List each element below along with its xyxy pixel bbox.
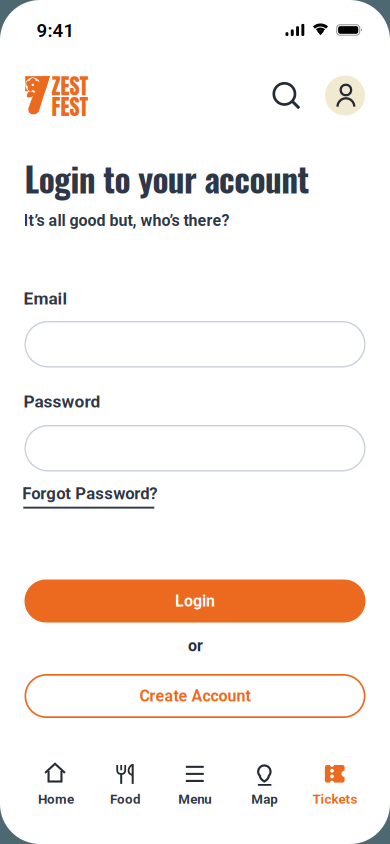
- staticText: Login: [175, 592, 215, 610]
- staticText: 9:41: [36, 20, 74, 42]
- button[interactable]: Home: [20, 754, 90, 806]
- button[interactable]: Login: [24, 579, 365, 622]
- staticText: Forgot Password?: [22, 484, 157, 503]
- button[interactable]: Food: [90, 754, 160, 806]
- button[interactable]: Account: [325, 75, 365, 115]
- staticText: Tickets: [312, 791, 357, 807]
- staticText: Login to your account: [24, 154, 309, 203]
- button[interactable]: Search: [271, 80, 301, 110]
- staticText: Food: [110, 791, 141, 807]
- staticText: It’s all good but, who’s there?: [23, 211, 229, 230]
- staticText: Home: [38, 791, 74, 807]
- staticText: Map: [251, 791, 278, 807]
- staticText: Create Account: [139, 687, 250, 705]
- staticText: or: [188, 636, 203, 655]
- staticText: Email: [23, 288, 67, 309]
- staticText: Password: [23, 391, 100, 412]
- staticText: ZEST: [52, 69, 89, 102]
- button[interactable]: Tickets: [300, 754, 370, 806]
- staticText: FEST: [52, 90, 89, 123]
- button[interactable]: Menu: [160, 754, 230, 806]
- button[interactable]: Forgot Password?: [22, 484, 157, 503]
- staticText: Menu: [178, 791, 211, 807]
- button[interactable]: Map: [230, 754, 300, 806]
- button[interactable]: Create Account: [24, 674, 365, 718]
